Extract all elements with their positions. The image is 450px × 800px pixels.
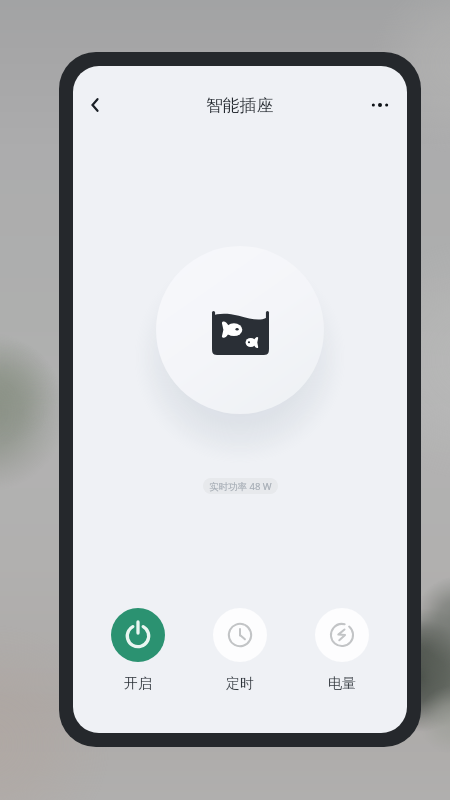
button[interactable]: 定时 — [213, 608, 267, 693]
staticText: 定时 — [226, 675, 254, 693]
button[interactable]: 电量 — [315, 608, 369, 693]
staticText: 智能插座 — [206, 95, 274, 116]
staticText: 电量 — [328, 675, 356, 693]
staticText: 实时功率 48 W — [209, 480, 272, 493]
button[interactable]: Back — [74, 84, 116, 126]
button[interactable]: More options — [359, 84, 401, 126]
button[interactable]: Toggle smart plug — [156, 246, 324, 414]
staticText: 开启 — [124, 675, 152, 693]
button[interactable]: 开启 — [111, 608, 165, 693]
